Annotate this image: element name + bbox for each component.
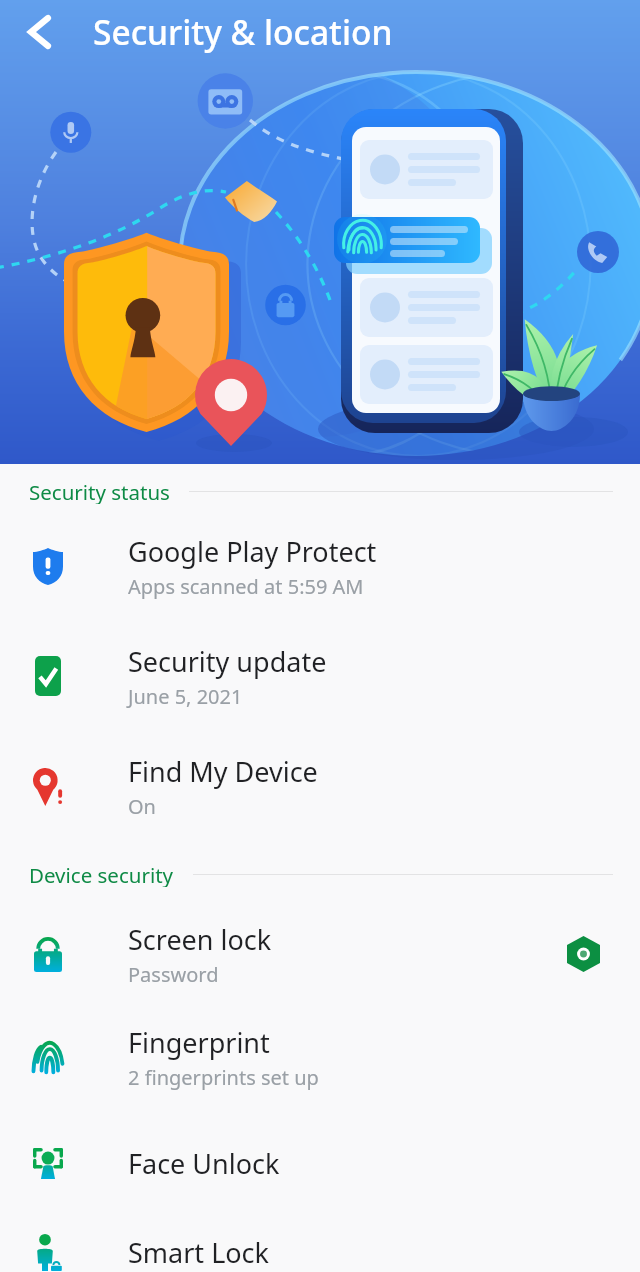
button[interactable]: Fingerprint: [0, 1002, 640, 1112]
staticText: 2 fingerprints set up: [128, 1064, 319, 1091]
staticText: Face Unlock: [128, 1145, 280, 1182]
staticText: Apps scanned at 5:59 AM: [128, 573, 364, 600]
button[interactable]: Smart Lock: [0, 1220, 640, 1272]
staticText: Security status: [29, 478, 170, 504]
staticText: Security update: [128, 643, 327, 680]
staticText: Smart Lock: [128, 1234, 269, 1271]
staticText: On: [128, 793, 156, 820]
button[interactable]: Navigate back: [0, 0, 93, 64]
button[interactable]: Face Unlock: [0, 1118, 640, 1208]
staticText: June 5, 2021: [128, 683, 243, 710]
button[interactable]: Find My Device: [0, 731, 640, 841]
button[interactable]: Screen lock: [0, 899, 640, 1009]
staticText: Fingerprint: [128, 1024, 270, 1061]
staticText: Password: [128, 961, 219, 988]
staticText: Device security: [29, 861, 174, 887]
button[interactable]: Security update: [0, 621, 640, 731]
staticText: Google Play Protect: [128, 533, 377, 570]
staticText: Screen lock: [128, 921, 272, 958]
staticText: Security & location: [93, 9, 393, 55]
staticText: Find My Device: [128, 753, 318, 790]
button[interactable]: Google Play Protect: [0, 511, 640, 621]
